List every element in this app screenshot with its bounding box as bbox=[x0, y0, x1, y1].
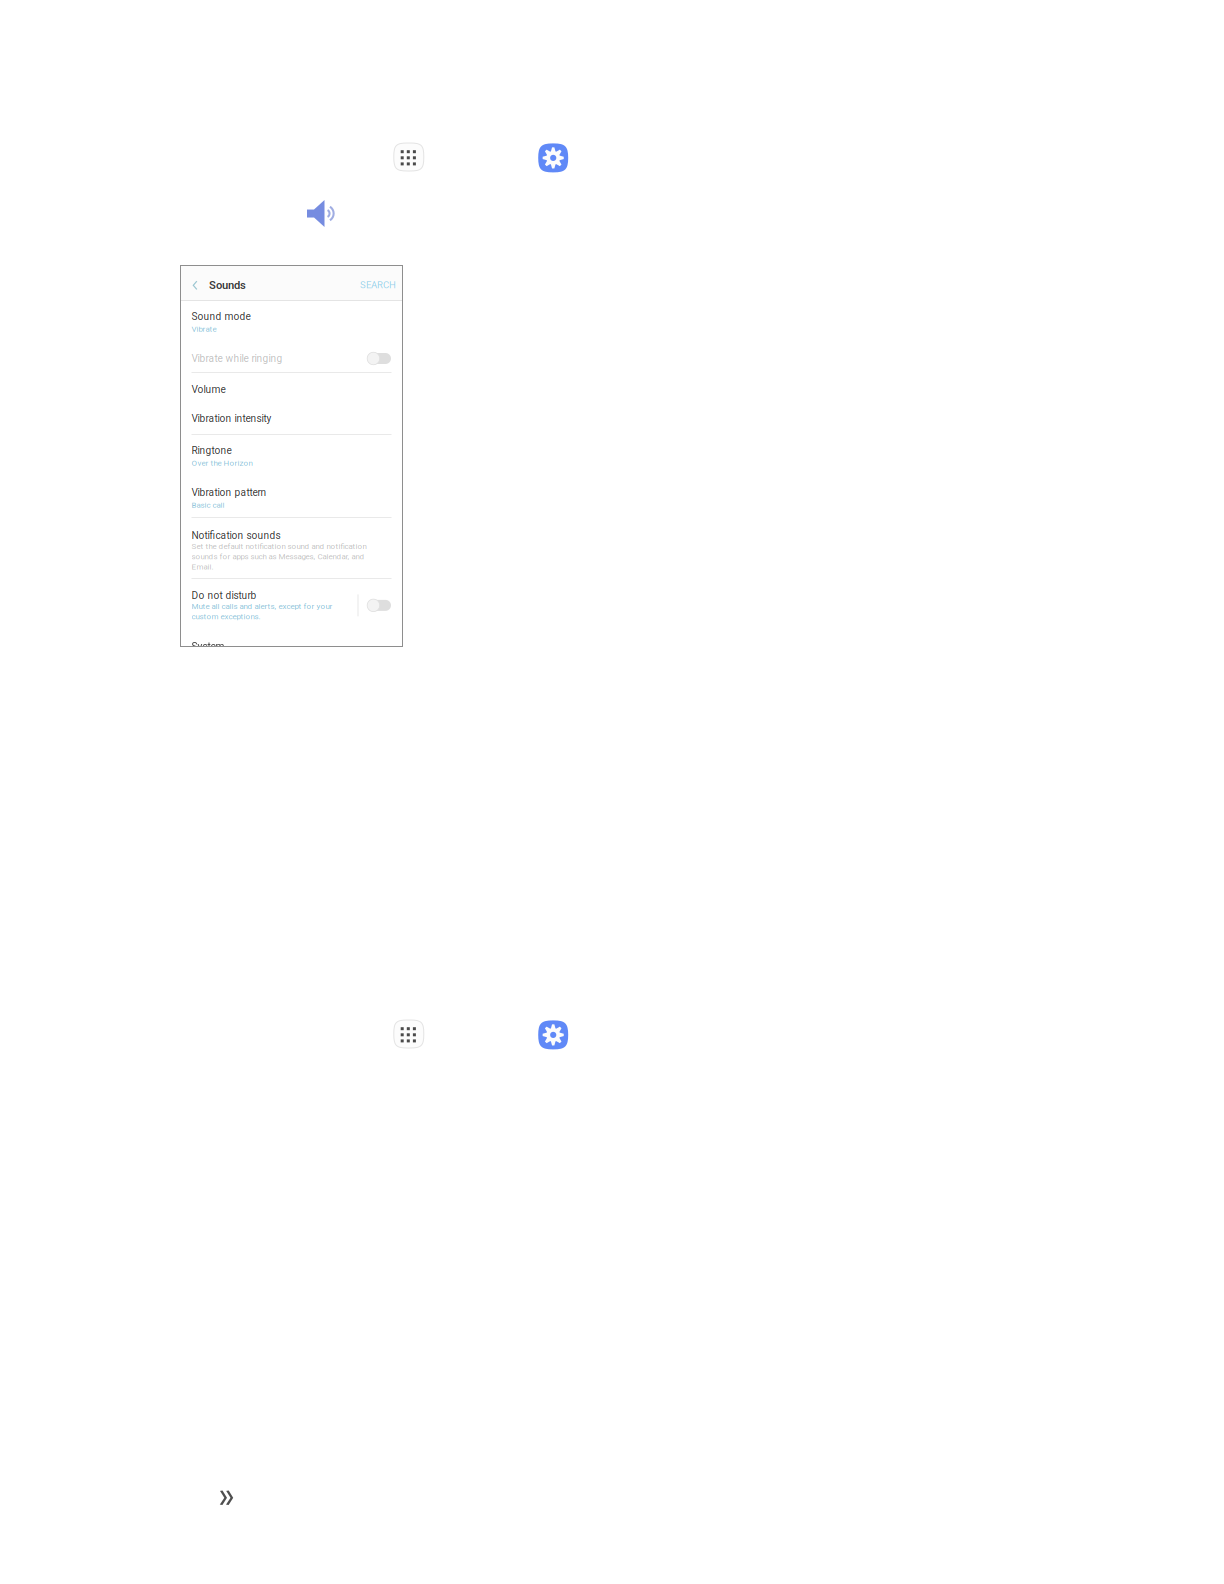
button[interactable]: Vibration intensity bbox=[191, 411, 391, 425]
staticText: Set the default notification sound and n… bbox=[191, 541, 366, 571]
staticText: Vibration intensity bbox=[191, 413, 271, 424]
staticText: Volume bbox=[191, 384, 225, 395]
staticText: System bbox=[191, 640, 224, 652]
staticText: Mute all calls and alerts, except for yo… bbox=[191, 601, 332, 621]
staticText: Sounds bbox=[209, 278, 246, 292]
staticText: Over the Horizon bbox=[191, 458, 252, 468]
staticText: Vibrate bbox=[191, 324, 216, 334]
staticText: Notification sounds bbox=[191, 529, 280, 541]
button[interactable]: Apps bbox=[394, 143, 424, 171]
staticText: Ringtone bbox=[191, 444, 231, 456]
button[interactable]: Settings bbox=[538, 1020, 568, 1049]
button[interactable]: Do not disturb bbox=[191, 589, 391, 623]
staticText: Basic call bbox=[191, 500, 224, 510]
button[interactable]: Vibrate while ringing bbox=[191, 347, 391, 369]
button[interactable]: Back bbox=[187, 275, 203, 295]
button[interactable]: Sound mode bbox=[191, 310, 391, 344]
button[interactable]: Settings bbox=[538, 143, 568, 172]
button[interactable]: Ringtone bbox=[191, 444, 391, 474]
staticText: Do not disturb bbox=[191, 589, 256, 601]
button[interactable]: SEARCH bbox=[359, 280, 396, 290]
staticText: Vibrate while ringing bbox=[191, 353, 282, 364]
staticText: Sound mode bbox=[191, 310, 250, 322]
button[interactable]: Notification sounds bbox=[191, 529, 391, 574]
button[interactable]: Volume bbox=[191, 382, 391, 396]
staticText: Vibration pattern bbox=[191, 486, 266, 498]
button[interactable]: Vibration pattern bbox=[191, 486, 391, 516]
staticText: SEARCH bbox=[360, 279, 396, 291]
button[interactable]: Apps bbox=[394, 1020, 424, 1048]
